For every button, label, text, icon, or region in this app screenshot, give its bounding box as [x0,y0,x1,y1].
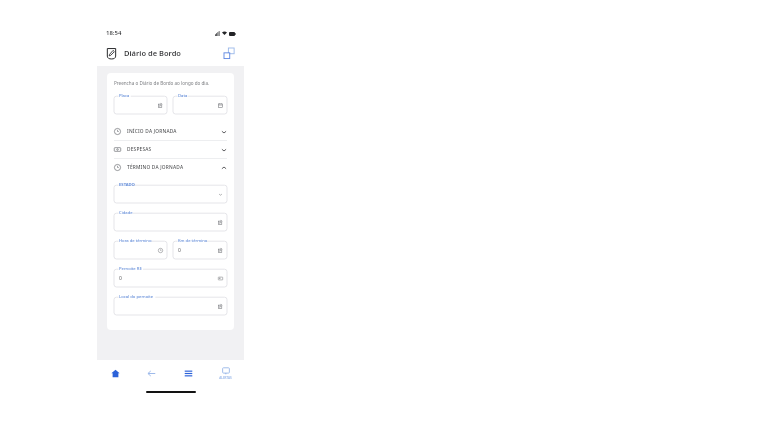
staticText: 0 [178,247,181,254]
button[interactable]: Km de término [173,238,227,259]
button[interactable]: TÉRMINO DA JORNADA [114,159,227,176]
button[interactable]: DESPESAS [114,141,227,158]
staticText: Diário de Bordo [124,48,181,58]
staticText: TÉRMINO DA JORNADA [127,164,184,171]
staticText: Local do pernoite [119,294,154,300]
button[interactable]: Voltar [133,360,170,386]
staticText: Data [178,93,188,99]
staticText: ESTADO [119,182,135,188]
staticText: INÍCIO DA JORNADA [127,128,177,135]
button[interactable]: Local do pernoite [114,294,227,315]
button[interactable]: Hora de término [114,238,167,259]
button[interactable]: ESTADO [114,182,227,203]
staticText: Cidade [119,210,133,216]
staticText: Hora de término [119,238,152,244]
staticText: Placa [119,93,130,99]
staticText: Km de término [178,238,208,244]
staticText: Preencha o Diário de Bordo ao longo do d… [114,80,210,86]
staticText: 0 [119,275,122,282]
staticText: 18:54 [106,29,122,37]
button[interactable]: ALERTAS [207,360,244,386]
staticText: ALERTAS [219,376,232,380]
button[interactable]: Placa [114,93,167,114]
button[interactable]: Início [97,360,133,386]
staticText: DESPESAS [127,146,152,153]
button[interactable]: Pernoite R$ [114,266,227,287]
staticText: Pernoite R$ [119,266,142,272]
button[interactable]: Menu [170,360,207,386]
button[interactable]: Aplicativos [222,46,236,60]
button[interactable]: Data [173,93,227,114]
button[interactable]: Diário de Bordo [105,47,118,60]
button[interactable]: INÍCIO DA JORNADA [114,123,227,140]
button[interactable]: Cidade [114,210,227,231]
